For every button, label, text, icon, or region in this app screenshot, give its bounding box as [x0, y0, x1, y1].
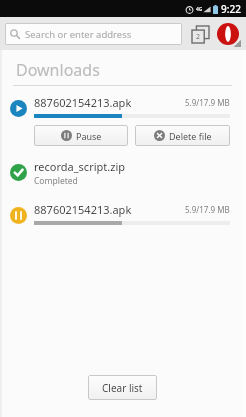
button[interactable]: Clear list	[88, 375, 157, 400]
button[interactable]: 887602154213.apk	[2, 95, 243, 146]
staticText: 9:22	[221, 2, 241, 16]
staticText: 4G	[196, 6, 203, 13]
button[interactable]: Tabs	[188, 22, 212, 46]
staticText: 887602154213.apk	[34, 95, 132, 110]
button[interactable]: 887602154213.apk	[2, 202, 243, 225]
button[interactable]: Pause	[34, 125, 128, 146]
staticText: Delete file	[169, 130, 212, 142]
staticText: 887602154213.apk	[34, 202, 132, 217]
button[interactable]: Search or enter address	[5, 23, 182, 45]
button[interactable]: Delete file	[135, 125, 230, 146]
button[interactable]: Opera menu	[215, 21, 241, 47]
staticText: Pause	[76, 130, 102, 142]
staticText: Completed	[34, 175, 78, 187]
staticText: recorda_script.zip	[34, 159, 125, 174]
staticText: Clear list	[102, 381, 143, 395]
staticText: 5.9/17.9 MB	[185, 97, 230, 108]
staticText: Downloads	[16, 59, 100, 81]
staticText: 2	[196, 32, 201, 42]
staticText: Search or enter address	[25, 28, 132, 41]
staticText: 5.9/17.9 MB	[185, 204, 230, 215]
button[interactable]: recorda_script.zip	[2, 159, 243, 187]
